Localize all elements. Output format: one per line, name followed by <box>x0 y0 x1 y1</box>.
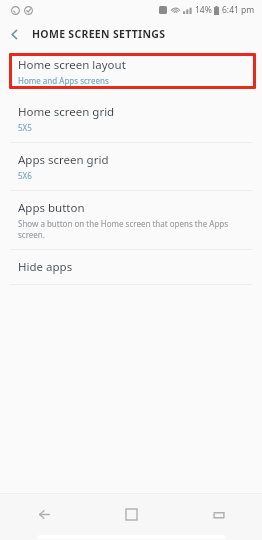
button[interactable]: Recents <box>175 494 262 535</box>
staticText: Hide apps <box>18 259 73 275</box>
staticText: Home screen layout <box>18 57 126 73</box>
staticText: Home screen grid <box>18 104 115 120</box>
button[interactable]: Navigate up <box>0 20 28 48</box>
staticText: 5X5 <box>18 122 32 133</box>
staticText: Home and Apps screens <box>18 75 109 86</box>
staticText: HOME SCREEN SETTINGS <box>32 27 166 41</box>
button[interactable]: Home screen layout <box>9 53 256 89</box>
button[interactable]: Hide apps <box>0 250 262 284</box>
button[interactable]: Home <box>88 494 175 535</box>
button[interactable]: Back <box>0 494 88 535</box>
staticText: 5X6 <box>18 170 32 181</box>
staticText: Show a button on the Home screen that op… <box>18 218 250 240</box>
staticText: Apps screen grid <box>18 152 109 168</box>
staticText: 6:41 pm <box>222 4 255 16</box>
staticText: Apps button <box>18 200 85 216</box>
button[interactable]: Apps button <box>0 191 262 249</box>
staticText: 14% <box>195 4 212 16</box>
button[interactable]: Home screen grid <box>0 95 262 142</box>
button[interactable]: Apps screen grid <box>0 143 262 190</box>
